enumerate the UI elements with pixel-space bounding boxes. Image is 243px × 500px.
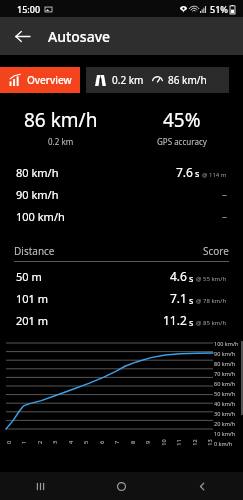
- staticText: @ 55 km/h: [196, 275, 227, 283]
- staticText: 70 km/h: [214, 370, 240, 377]
- button[interactable]: 50 m: [0, 265, 243, 287]
- staticText: 8: [128, 440, 135, 444]
- staticText: Overview: [27, 73, 72, 87]
- staticText: 45%: [163, 107, 201, 133]
- button[interactable]: Home: [81, 472, 162, 500]
- staticText: 11: [175, 439, 182, 446]
- staticText: 7.6: [176, 164, 193, 180]
- staticText: 4: [66, 440, 73, 444]
- staticText: s: [195, 167, 200, 179]
- staticText: 7: [112, 440, 119, 444]
- staticText: 100 km/h: [16, 209, 65, 224]
- staticText: –: [222, 187, 227, 201]
- staticText: 80 km/h: [16, 165, 59, 180]
- staticText: @ 85 km/h: [196, 319, 227, 327]
- staticText: 9: [143, 440, 150, 444]
- staticText: s: [189, 294, 194, 306]
- staticText: 80 km/h: [214, 360, 240, 367]
- staticText: 5: [81, 440, 88, 444]
- staticText: 11.2: [163, 312, 187, 328]
- staticText: 15:00: [17, 3, 41, 15]
- staticText: 0: [4, 440, 11, 444]
- staticText: –: [222, 209, 227, 223]
- staticText: 86 km/h: [24, 107, 98, 133]
- staticText: 50 km/h: [214, 390, 240, 397]
- button[interactable]: 100 km/h: [0, 205, 243, 227]
- staticText: @ 78 km/h: [196, 297, 227, 305]
- button[interactable]: 80 km/h: [0, 161, 243, 183]
- button[interactable]: Back: [8, 22, 36, 50]
- staticText: 90 km/h: [16, 187, 59, 202]
- staticText: 3: [50, 440, 57, 444]
- button[interactable]: 90 km/h: [0, 183, 243, 205]
- staticText: 0 km/h: [214, 440, 240, 447]
- staticText: 50 m: [16, 269, 42, 284]
- staticText: 12: [191, 439, 198, 446]
- staticText: 20 km/h: [214, 420, 240, 427]
- staticText: 100 km/h: [214, 340, 240, 347]
- button[interactable]: Recent apps: [0, 472, 81, 500]
- button[interactable]: 201 m: [0, 309, 243, 331]
- staticText: 2: [35, 440, 42, 444]
- staticText: 6: [97, 440, 104, 444]
- staticText: Score: [203, 244, 229, 258]
- staticText: 30 km/h: [214, 410, 240, 417]
- staticText: 51%: [210, 3, 228, 15]
- staticText: Distance: [14, 244, 55, 258]
- staticText: 60 km/h: [214, 380, 240, 387]
- staticText: 0.2 km: [48, 136, 74, 147]
- staticText: 10: [160, 439, 167, 446]
- button[interactable]: Back: [162, 472, 243, 500]
- staticText: 201 m: [16, 313, 49, 328]
- staticText: GPS accuracy: [157, 136, 207, 147]
- staticText: 40 km/h: [214, 400, 240, 407]
- staticText: 90 km/h: [214, 350, 240, 357]
- staticText: s: [189, 272, 194, 284]
- staticText: Autosave: [48, 27, 111, 46]
- staticText: 7.1: [170, 290, 187, 306]
- staticText: 13: [206, 439, 213, 446]
- button[interactable]: Overview: [0, 67, 80, 93]
- staticText: 101 m: [16, 291, 49, 306]
- staticText: 4.6: [170, 268, 187, 284]
- staticText: 0.2 km: [112, 73, 144, 87]
- button[interactable]: 101 m: [0, 287, 243, 309]
- button[interactable]: 0.2 km: [86, 67, 229, 93]
- staticText: @ 114 m: [202, 171, 227, 179]
- staticText: 86 km/h: [168, 73, 207, 87]
- staticText: 1: [19, 440, 26, 444]
- staticText: 10 km/h: [214, 430, 240, 437]
- staticText: s: [189, 316, 194, 328]
